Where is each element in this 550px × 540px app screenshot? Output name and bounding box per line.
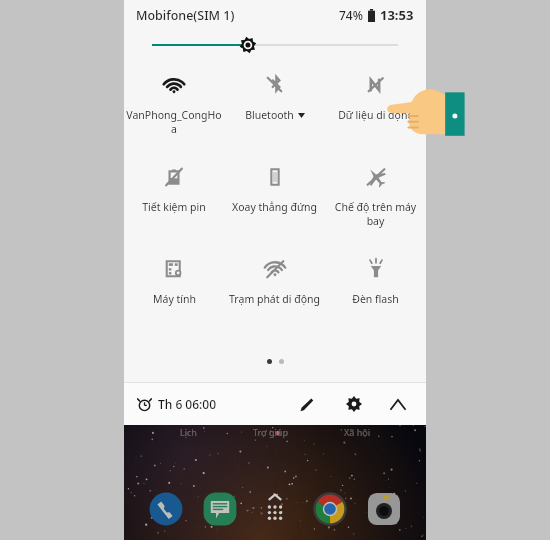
button[interactable]: Phone	[145, 488, 187, 530]
staticText: 74%	[339, 7, 363, 23]
staticText: Bluetooth	[245, 108, 294, 122]
button[interactable]: Settings	[334, 384, 374, 424]
staticText: Dữ liệu di động	[338, 108, 414, 122]
button[interactable]: Đèn flash	[325, 254, 426, 308]
button[interactable]: Máy tính	[124, 254, 224, 308]
staticText: Máy tính	[153, 292, 196, 306]
staticText: Xã hội	[344, 426, 370, 438]
button[interactable]: Dữ liệu di động	[325, 70, 426, 124]
staticText: Trạm phát di động	[229, 292, 320, 306]
staticText: Chế độ trên máy bay	[325, 200, 426, 228]
button[interactable]	[124, 30, 426, 60]
button[interactable]: Edit	[286, 384, 326, 424]
staticText: 13:53	[380, 6, 414, 24]
button[interactable]: Collapse	[378, 384, 418, 424]
staticText: Tiết kiệm pin	[142, 200, 206, 214]
button[interactable]: All apps	[254, 488, 296, 530]
button[interactable]: Bluetooth	[224, 70, 325, 124]
staticText: Lịch	[180, 426, 197, 438]
button[interactable]: Camera	[363, 488, 405, 530]
staticText: Mobifone(SIM 1)	[136, 7, 235, 24]
button[interactable]: VanPhong_CongHoa	[124, 70, 224, 138]
button[interactable]: Tiết kiệm pin	[124, 162, 224, 216]
button[interactable]: Messages	[199, 488, 241, 530]
button[interactable]: Trạm phát di động	[224, 254, 325, 308]
staticText: VanPhong_CongHoa	[124, 108, 224, 136]
button[interactable]: Th 6 06:00	[138, 392, 217, 416]
staticText: Xoay thẳng đứng	[232, 200, 317, 214]
button[interactable]: Xoay thẳng đứng	[224, 162, 325, 216]
staticText: Th 6 06:00	[158, 396, 217, 412]
staticText: Trợ giúp	[253, 426, 288, 438]
staticText: Đèn flash	[352, 292, 399, 306]
other: Tap mobile data	[389, 83, 461, 138]
button[interactable]: Chế độ trên máy bay	[325, 162, 426, 230]
button[interactable]: Chrome	[309, 488, 351, 530]
